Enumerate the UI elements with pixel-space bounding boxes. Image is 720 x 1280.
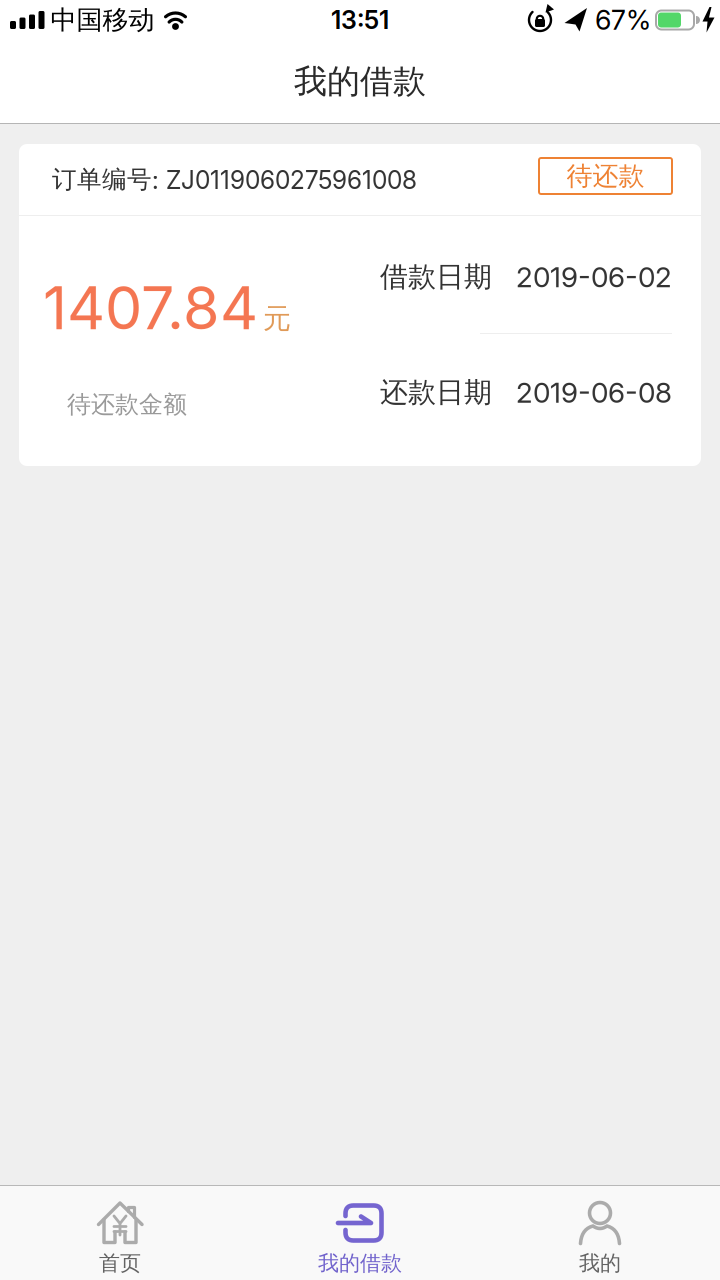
button[interactable]: 我的 — [480, 1186, 720, 1280]
staticText: 待还款金额 — [67, 389, 187, 420]
staticText: 我的借款 — [318, 1250, 402, 1276]
staticText: 我的借款 — [294, 61, 426, 102]
staticText: 我的 — [579, 1250, 621, 1276]
staticText: 13:51 — [331, 5, 389, 35]
staticText: 首页 — [99, 1250, 141, 1276]
staticText: 借款日期 — [380, 259, 492, 295]
button[interactable]: 首页 — [0, 1186, 240, 1280]
staticText: 67% — [595, 4, 651, 36]
staticText: 中国移动 — [50, 4, 154, 36]
staticText: 还款日期 — [380, 375, 492, 410]
staticText: 元 — [263, 301, 291, 336]
staticText: 2019-06-02 — [516, 260, 672, 294]
button[interactable]: 我的借款 — [240, 1186, 480, 1280]
staticText: 1407.84 — [43, 272, 258, 343]
staticText: 订单编号: ZJ0119060275961008 — [52, 164, 417, 195]
staticText: 2019-06-08 — [516, 376, 672, 409]
staticText: 待还款 — [566, 160, 644, 192]
button[interactable]: 订单编号: ZJ0119060275961008 — [19, 144, 701, 466]
